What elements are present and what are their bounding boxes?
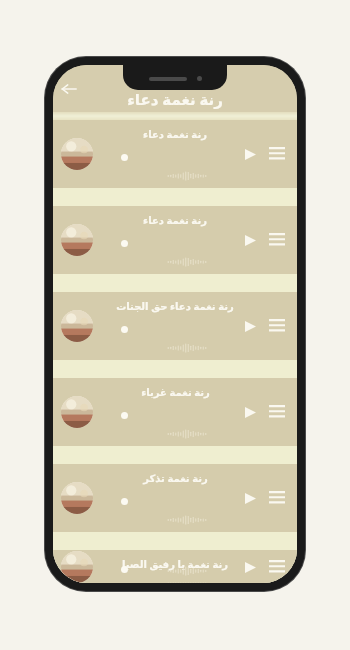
button[interactable]: Menu: [265, 228, 289, 252]
button[interactable]: Play: [239, 487, 261, 509]
button[interactable]: Play: [239, 315, 261, 337]
button[interactable]: رنة نغمة يا رفيق الصبا: [53, 550, 297, 583]
button[interactable]: Play: [239, 556, 261, 578]
staticText: رنة نغمة يا رفيق الصبا: [122, 557, 228, 571]
staticText: رنة نغمة دعاء: [143, 127, 207, 141]
button[interactable]: رنة نغمة دعاء حق الجنات: [53, 292, 297, 360]
staticText: رنة نغمة دعاء: [143, 213, 207, 227]
button[interactable]: Play: [239, 143, 261, 165]
staticText: رنة نغمة دعاء حق الجنات: [116, 299, 234, 313]
button[interactable]: رنة نغمة دعاء: [53, 120, 297, 188]
staticText: رنة نغمة تذكر: [143, 471, 208, 485]
button[interactable]: Menu: [265, 142, 289, 166]
button[interactable]: Menu: [265, 400, 289, 424]
button[interactable]: رنة نغمة تذكر: [53, 464, 297, 532]
button[interactable]: Menu: [265, 555, 289, 579]
button[interactable]: Menu: [265, 486, 289, 510]
button[interactable]: رنة نغمة دعاء: [53, 206, 297, 274]
button[interactable]: Menu: [265, 314, 289, 338]
staticText: رنة نغمة دعاء: [127, 89, 223, 109]
button[interactable]: Play: [239, 229, 261, 251]
button[interactable]: رنة نغمة غرباء: [53, 378, 297, 446]
button[interactable]: Back: [55, 75, 83, 103]
button[interactable]: Play: [239, 401, 261, 423]
staticText: رنة نغمة غرباء: [141, 385, 210, 399]
